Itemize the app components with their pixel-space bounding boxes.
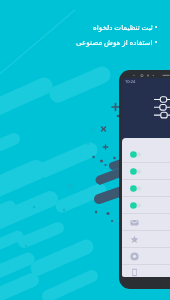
button[interactable] <box>122 180 170 196</box>
staticText: استفاده از هوش مصنوعی • <box>76 37 158 47</box>
staticText: 10:24 <box>125 79 136 84</box>
button[interactable] <box>122 146 170 162</box>
button[interactable]: Mail <box>122 214 170 230</box>
button[interactable] <box>122 163 170 179</box>
button[interactable]: Star <box>122 231 170 247</box>
button[interactable]: Device <box>122 265 170 277</box>
other: Star <box>130 235 139 244</box>
other: Clock <box>130 252 139 261</box>
other: Mail <box>130 218 139 227</box>
button[interactable]: Clock <box>122 248 170 264</box>
other: Device <box>130 268 139 277</box>
staticText: ثبت تنظیمات دلخواه • <box>93 22 158 32</box>
button[interactable] <box>122 197 170 213</box>
